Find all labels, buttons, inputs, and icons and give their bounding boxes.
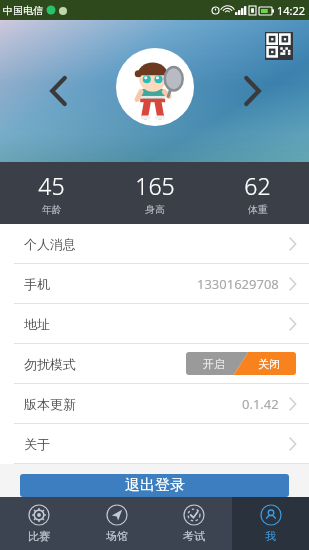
button[interactable]: Avatar: [116, 48, 194, 126]
button[interactable]: 版本更新: [0, 384, 309, 424]
staticText: 13301629708: [197, 275, 279, 293]
staticText: 考试: [183, 529, 205, 543]
button[interactable]: 165: [103, 170, 206, 216]
staticText: 我: [265, 529, 276, 543]
staticText: 开启: [203, 357, 225, 371]
staticText: 62: [244, 170, 271, 201]
button[interactable]: 我: [232, 497, 309, 550]
staticText: 关于: [24, 436, 50, 452]
button[interactable]: Previous: [42, 74, 76, 108]
staticText: 14:22: [277, 3, 306, 18]
staticText: 个人消息: [24, 236, 76, 252]
staticText: 45: [38, 170, 65, 201]
staticText: 退出登录: [125, 476, 185, 495]
staticText: 场馆: [106, 529, 128, 543]
staticText: 关闭: [258, 357, 280, 371]
button[interactable]: 开启: [186, 352, 296, 375]
staticText: 地址: [24, 316, 50, 332]
staticText: 版本更新: [24, 396, 76, 412]
button[interactable]: 个人消息: [0, 224, 309, 264]
staticText: 165: [135, 170, 175, 201]
button[interactable]: 45: [0, 170, 103, 216]
button[interactable]: 关于: [0, 424, 309, 464]
button[interactable]: 比赛: [0, 497, 78, 550]
staticText: 体重: [248, 203, 268, 216]
staticText: 手机: [24, 276, 50, 292]
button[interactable]: Next: [235, 74, 269, 108]
button[interactable]: 场馆: [78, 497, 155, 550]
staticText: 0.1.42: [242, 395, 279, 413]
staticText: 中国电信: [3, 4, 43, 17]
staticText: 勿扰模式: [24, 356, 76, 372]
staticText: 年龄: [42, 203, 62, 216]
button[interactable]: 地址: [0, 304, 309, 344]
staticText: 身高: [145, 203, 165, 216]
button[interactable]: 手机: [0, 264, 309, 304]
button[interactable]: 考试: [155, 497, 232, 550]
staticText: 比赛: [28, 529, 50, 543]
button[interactable]: QR code: [265, 32, 293, 60]
button[interactable]: 退出登录: [20, 474, 289, 497]
button[interactable]: 62: [206, 170, 309, 216]
